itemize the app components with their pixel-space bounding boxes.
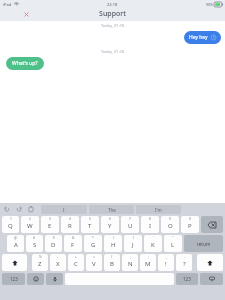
button[interactable]: $: [45, 235, 62, 252]
button[interactable]: ): [124, 235, 142, 252]
staticText: Q: [8, 222, 13, 230]
staticText: 5: [89, 217, 91, 221]
staticText: 123: [183, 276, 191, 282]
button[interactable]: Redo: [15, 205, 23, 213]
staticText: L: [171, 241, 175, 249]
staticText: N: [128, 260, 133, 268]
staticText: 4: [69, 217, 71, 221]
button[interactable]: %: [32, 254, 48, 271]
button[interactable]: What's up?: [6, 57, 44, 70]
button[interactable]: Hide keyboard: [200, 273, 223, 285]
staticText: 8: [149, 217, 151, 221]
staticText: C: [74, 260, 78, 268]
button[interactable]: 5: [81, 216, 99, 233]
staticText: ': [153, 236, 154, 240]
staticText: M: [145, 260, 151, 268]
button[interactable]: Backspace: [201, 216, 223, 233]
staticText: I: [63, 207, 65, 213]
staticText: Today, 01:18: [101, 49, 125, 54]
staticText: =: [93, 255, 95, 259]
button[interactable]: 0: [181, 216, 199, 233]
button[interactable]: Emoji: [27, 273, 44, 285]
staticText: +: [75, 255, 77, 259]
staticText: %: [39, 255, 42, 259]
button[interactable]: =: [86, 254, 102, 271]
button[interactable]: &: [64, 235, 82, 252]
button[interactable]: 6: [101, 216, 119, 233]
button[interactable]: ,: [158, 254, 174, 271]
staticText: U: [128, 222, 133, 230]
button[interactable]: 123: [2, 273, 25, 285]
button[interactable]: Close: [22, 10, 30, 18]
staticText: Today, 01:18: [101, 23, 125, 28]
button[interactable]: Undo: [3, 205, 11, 213]
button[interactable]: The: [89, 205, 134, 214]
button[interactable]: Paste: [27, 205, 35, 213]
button[interactable]: 8: [141, 216, 159, 233]
staticText: ;: [130, 255, 131, 259]
staticText: Hey hey: [189, 34, 208, 41]
button[interactable]: Hey hey: [184, 31, 221, 44]
button[interactable]: 3: [41, 216, 59, 233]
button[interactable]: I: [41, 205, 87, 214]
button[interactable]: #: [26, 235, 43, 252]
button[interactable]: ': [144, 235, 162, 252]
button[interactable]: 1: [2, 216, 19, 233]
staticText: X: [56, 260, 60, 268]
staticText: 0: [189, 217, 191, 221]
button[interactable]: *: [84, 235, 102, 252]
button[interactable]: Shift: [2, 254, 27, 271]
staticText: K: [151, 241, 155, 249]
staticText: ): [133, 236, 134, 240]
staticText: ,: [166, 255, 167, 259]
button[interactable]: :: [140, 254, 156, 271]
staticText: ?: [183, 260, 186, 268]
button[interactable]: Dictate: [46, 273, 63, 285]
button[interactable]: return: [184, 235, 223, 252]
staticText: *: [92, 236, 94, 240]
button[interactable]: 123: [176, 273, 198, 285]
staticText: iPad: [3, 2, 12, 7]
staticText: -: [57, 255, 59, 259]
staticText: 9: [169, 217, 171, 221]
staticText: &: [72, 236, 75, 240]
button[interactable]: .: [176, 254, 192, 271]
staticText: W: [27, 222, 33, 230]
staticText: I'm: [155, 207, 162, 213]
staticText: R: [68, 222, 72, 230]
button[interactable]: /: [104, 254, 120, 271]
staticText: D: [51, 241, 56, 249]
button[interactable]: 9: [161, 216, 179, 233]
staticText: $: [53, 236, 55, 240]
staticText: 7: [129, 217, 131, 221]
staticText: The: [108, 207, 116, 213]
staticText: What's up?: [12, 60, 38, 67]
staticText: P: [188, 222, 192, 230]
staticText: B: [110, 260, 114, 268]
staticText: #: [33, 236, 36, 240]
staticText: !: [165, 260, 167, 268]
button[interactable]: (: [104, 235, 122, 252]
staticText: 3: [49, 217, 51, 221]
staticText: /: [111, 255, 113, 259]
staticText: .: [184, 255, 185, 259]
button[interactable]: 4: [61, 216, 79, 233]
button[interactable]: @: [7, 235, 24, 252]
button[interactable]: 7: [121, 216, 139, 233]
button[interactable]: ": [164, 235, 182, 252]
button[interactable]: ;: [122, 254, 138, 271]
staticText: 23:18: [107, 2, 118, 7]
button[interactable]: 2: [21, 216, 39, 233]
staticText: Z: [38, 260, 42, 268]
button[interactable]: -: [50, 254, 66, 271]
staticText: V: [92, 260, 96, 268]
staticText: S: [33, 241, 37, 249]
button[interactable]: I'm: [136, 205, 181, 214]
button[interactable]: Shift: [197, 254, 223, 271]
staticText: 2: [29, 217, 31, 221]
staticText: F: [71, 241, 75, 249]
button[interactable]: +: [68, 254, 84, 271]
staticText: 90%: [206, 2, 213, 7]
